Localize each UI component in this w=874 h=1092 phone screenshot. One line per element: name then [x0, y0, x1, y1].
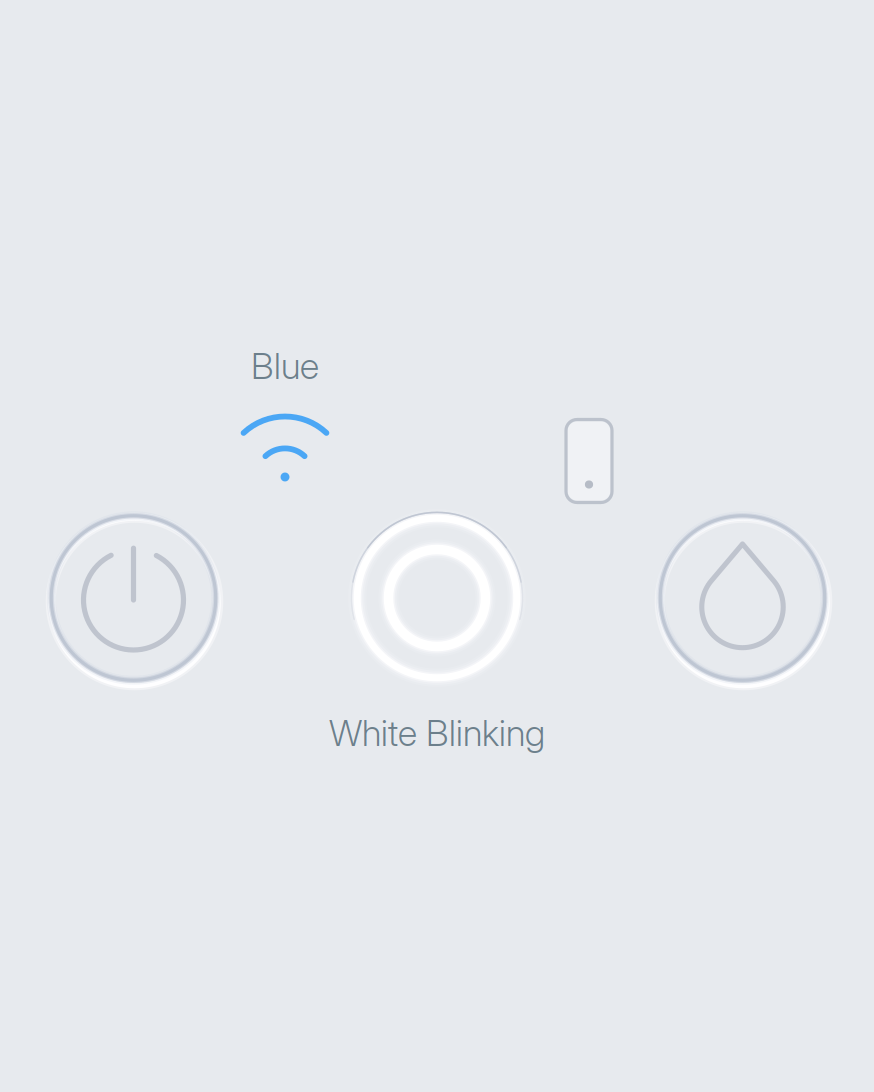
- staticText: Blue: [251, 344, 319, 388]
- button[interactable]: Power: [47, 512, 220, 684]
- button[interactable]: Water: [656, 512, 829, 684]
- staticText: White Blinking: [329, 711, 545, 755]
